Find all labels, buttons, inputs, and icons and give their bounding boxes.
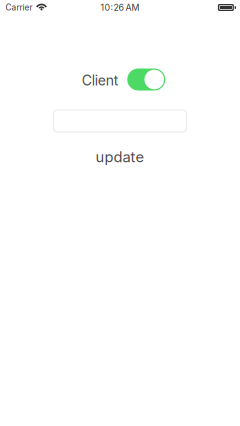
button[interactable]: Text field (53, 110, 186, 132)
staticText: Carrier (5, 2, 32, 12)
button[interactable]: update (85, 147, 155, 167)
button[interactable]: Client switch, on (127, 68, 165, 90)
staticText: Client (82, 72, 119, 89)
staticText: 10:26 AM (100, 2, 139, 13)
staticText: update (95, 148, 144, 166)
